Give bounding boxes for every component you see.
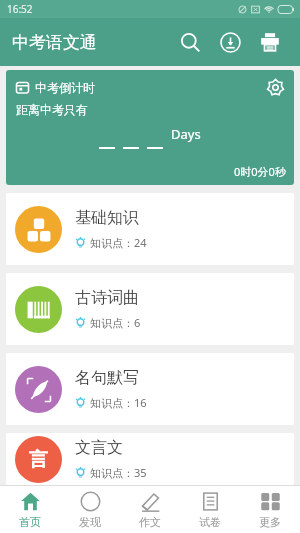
staticText: 知识点：6: [90, 315, 141, 330]
staticText: 更多: [259, 515, 281, 529]
button[interactable]: Search: [170, 22, 210, 62]
staticText: 试卷: [199, 515, 221, 529]
button[interactable]: 言: [6, 433, 294, 485]
staticText: Days: [171, 125, 201, 143]
staticText: 知识点：35: [90, 465, 147, 480]
button[interactable]: Print: [250, 22, 290, 62]
staticText: 知识点：24: [90, 235, 147, 250]
staticText: 文言文: [75, 438, 123, 458]
button[interactable]: Download: [210, 22, 250, 62]
button[interactable]: 作文: [120, 486, 180, 533]
staticText: 言: [29, 448, 48, 472]
button[interactable]: Settings: [264, 76, 286, 98]
staticText: 0时0分0秒: [234, 164, 286, 179]
button[interactable]: 试卷: [180, 486, 240, 533]
staticText: 中考语文通: [12, 32, 97, 53]
button[interactable]: 中考倒计时: [6, 70, 294, 185]
button[interactable]: 名句默写: [6, 353, 294, 425]
staticText: 16:52: [7, 2, 33, 16]
button[interactable]: 古诗词曲: [6, 273, 294, 345]
staticText: 首页: [19, 515, 41, 529]
button[interactable]: 更多: [240, 486, 300, 533]
staticText: 距离中考只有: [16, 102, 88, 117]
staticText: 作文: [139, 515, 161, 529]
staticText: 古诗词曲: [75, 288, 139, 308]
button[interactable]: 发现: [60, 486, 120, 533]
staticText: 中考倒计时: [35, 80, 95, 95]
staticText: 名句默写: [75, 368, 139, 388]
button[interactable]: 首页: [0, 486, 60, 533]
staticText: 知识点：16: [90, 395, 147, 410]
button[interactable]: 基础知识: [6, 193, 294, 265]
staticText: 发现: [79, 515, 101, 529]
staticText: 基础知识: [75, 208, 139, 228]
